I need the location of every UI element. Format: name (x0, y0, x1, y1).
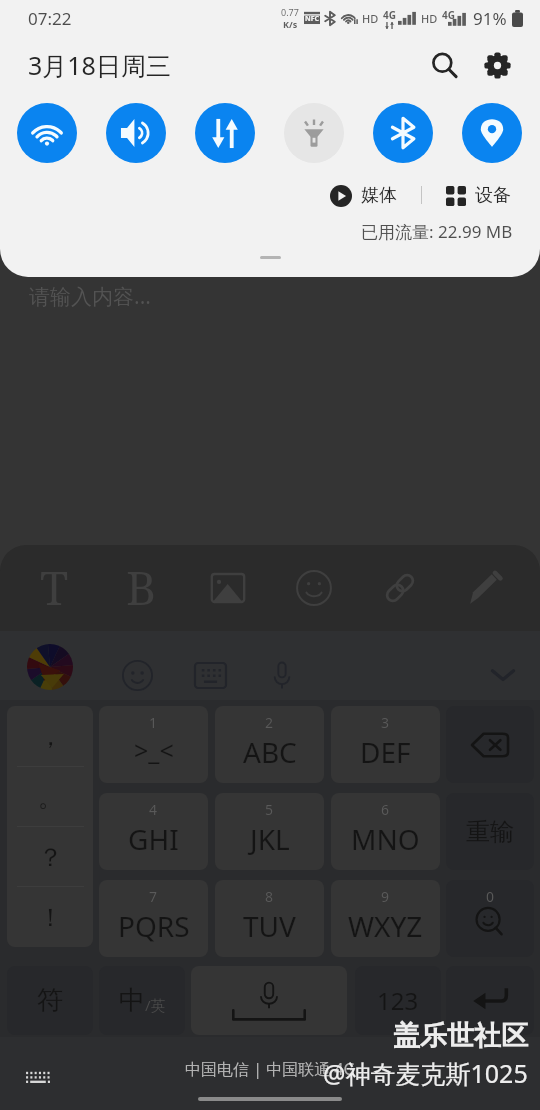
button[interactable]: 3 (331, 706, 440, 783)
staticText: /英 (145, 995, 166, 1015)
staticText: ， (38, 721, 63, 752)
staticText: 07:22 (28, 7, 72, 30)
staticText: 3月18日周三 (28, 48, 171, 82)
button[interactable]: Enter (446, 966, 534, 1035)
staticText: 4G (442, 8, 455, 22)
staticText: HD (362, 11, 379, 26)
button[interactable]: Settings (474, 42, 520, 88)
button[interactable]: Switch keyboard (24, 1063, 52, 1091)
staticText: T (40, 556, 69, 619)
staticText: 中国电信 | 中国联通 4G (185, 1058, 356, 1080)
staticText: 9 (381, 887, 390, 906)
button[interactable]: Emoji search (446, 880, 534, 957)
staticText: JKL (250, 820, 290, 858)
button[interactable]: Image (185, 545, 271, 631)
button[interactable]: Keyboard theme (27, 644, 73, 690)
staticText: 请输入内容... (29, 282, 151, 311)
staticText: ABC (243, 733, 297, 771)
button[interactable]: 设备 (444, 184, 513, 207)
staticText: 91% (473, 7, 507, 30)
button[interactable]: B (98, 545, 185, 631)
button[interactable]: 7 (99, 880, 208, 957)
button[interactable]: Backspace (446, 706, 534, 783)
staticText: K/s (283, 18, 298, 30)
staticText: 1 (149, 713, 158, 732)
staticText: PQRS (118, 907, 190, 945)
staticText: 盖乐世社区 (393, 1019, 528, 1053)
staticText: GHI (128, 820, 179, 858)
button[interactable]: Flashlight (284, 103, 344, 163)
staticText: 8 (265, 887, 274, 906)
staticText: 4G (383, 8, 396, 22)
staticText: DEF (360, 733, 411, 771)
button[interactable]: Stickers (115, 653, 159, 697)
staticText: 0.77 (281, 6, 299, 18)
button[interactable]: Space (191, 966, 347, 1035)
staticText: B (126, 556, 157, 619)
button[interactable]: 123 (355, 966, 441, 1035)
staticText: 设备 (475, 184, 511, 207)
button[interactable]: Link (357, 545, 443, 631)
staticText: 123 (377, 984, 419, 1017)
button[interactable]: 9 (331, 880, 440, 957)
staticText: 中 (119, 984, 145, 1017)
staticText: MNO (351, 820, 420, 858)
button[interactable]: 5 (215, 793, 324, 870)
button[interactable]: 符 (7, 966, 93, 1035)
button[interactable]: Search (421, 42, 467, 88)
staticText: >_< (134, 733, 174, 767)
button[interactable]: Location (462, 103, 522, 163)
button[interactable]: Sound (106, 103, 166, 163)
staticText: NFC (305, 14, 320, 24)
button[interactable]: 2 (215, 706, 324, 783)
button[interactable]: 中 (99, 966, 185, 1035)
staticText: 7 (149, 887, 158, 906)
staticText: 6 (381, 800, 390, 819)
button[interactable]: Keyboard layout (188, 653, 232, 697)
staticText: 媒体 (361, 184, 397, 207)
button[interactable]: 4 (99, 793, 208, 870)
staticText: ？ (38, 842, 63, 873)
staticText: @神奇麦克斯1025 (323, 1056, 528, 1090)
staticText: ！ (38, 902, 63, 933)
staticText: WXYZ (348, 907, 423, 945)
button[interactable]: 媒体 (328, 184, 399, 207)
staticText: 已用流量: 22.99 MB (361, 220, 513, 243)
button[interactable]: Mobile data (195, 103, 255, 163)
button[interactable]: Wi-Fi (17, 103, 77, 163)
button[interactable]: Emoji (271, 545, 357, 631)
staticText: 0 (486, 887, 495, 906)
button[interactable]: 8 (215, 880, 324, 957)
staticText: 5 (265, 800, 274, 819)
staticText: HD (421, 11, 438, 26)
button[interactable]: Bluetooth (373, 103, 433, 163)
button[interactable]: 6 (331, 793, 440, 870)
staticText: TUV (243, 907, 296, 945)
staticText: 2 (265, 713, 274, 732)
staticText: 4 (149, 800, 158, 819)
staticText: 符 (37, 984, 63, 1017)
button[interactable]: 重输 (446, 793, 534, 870)
staticText: 重输 (466, 817, 514, 847)
button[interactable]: 1 (99, 706, 208, 783)
button[interactable]: Draw (443, 545, 529, 631)
staticText: 3 (381, 713, 390, 732)
button[interactable]: T (11, 545, 98, 631)
